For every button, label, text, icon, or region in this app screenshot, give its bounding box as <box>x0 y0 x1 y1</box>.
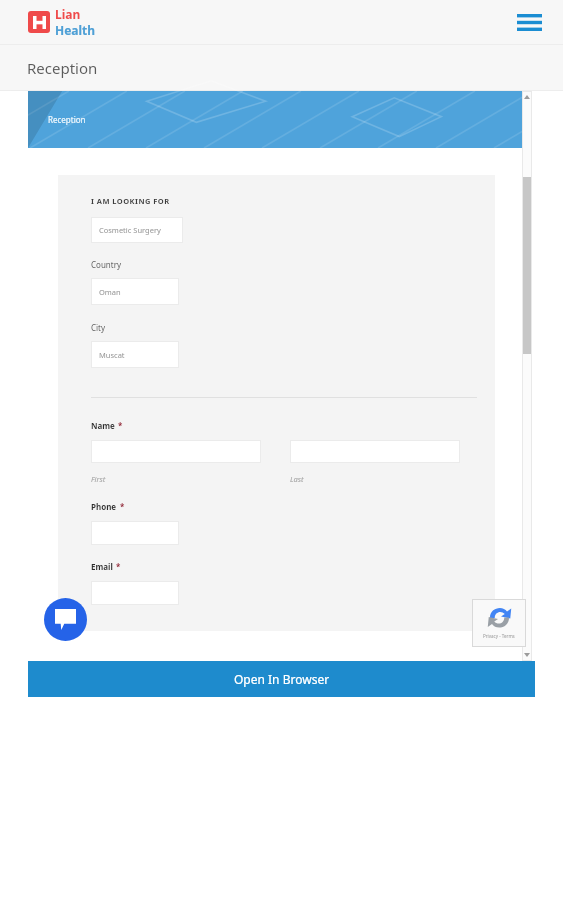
staticText: Email <box>91 561 113 572</box>
button[interactable]: Open menu <box>511 4 547 40</box>
staticText: First <box>91 474 106 484</box>
button[interactable] <box>91 581 179 605</box>
button[interactable]: Cosmetic Surgery <box>91 217 183 243</box>
staticText: Muscat <box>99 350 125 360</box>
button[interactable]: reCAPTCHA privacy and terms <box>472 599 526 647</box>
button[interactable] <box>91 521 179 545</box>
button[interactable]: Chat with us <box>44 598 87 641</box>
staticText: Phone <box>91 501 117 512</box>
staticText: Lian <box>55 6 81 22</box>
button[interactable]: Lian <box>28 6 96 38</box>
staticText: I AM LOOKING FOR <box>91 196 170 206</box>
button[interactable] <box>91 440 261 463</box>
staticText: Oman <box>99 287 121 297</box>
button[interactable]: Muscat <box>91 341 179 368</box>
staticText: Reception <box>27 58 98 78</box>
staticText: Health <box>55 22 96 38</box>
staticText: Reception <box>48 114 86 125</box>
staticText: Cosmetic Surgery <box>99 225 161 235</box>
staticText: Open In Browser <box>234 671 330 687</box>
staticText: * <box>120 501 125 512</box>
button[interactable]: Open In Browser <box>28 661 535 697</box>
staticText: * <box>116 561 121 572</box>
staticText: Privacy - Terms <box>483 633 515 639</box>
staticText: City <box>91 322 106 333</box>
button[interactable]: Oman <box>91 278 179 305</box>
staticText: Name <box>91 420 115 431</box>
staticText: Last <box>290 474 304 484</box>
staticText: * <box>118 420 123 431</box>
button[interactable] <box>290 440 460 463</box>
staticText: Country <box>91 259 122 270</box>
